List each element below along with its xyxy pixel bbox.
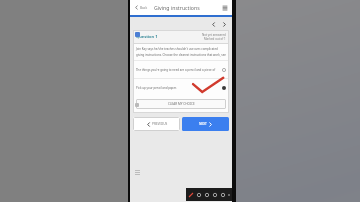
- button[interactable]: PREVIOUS: [133, 117, 180, 131]
- staticText: Giving instructions: [154, 4, 200, 11]
- button[interactable]: NEXT: [182, 117, 229, 131]
- staticText: Back: [140, 6, 148, 10]
- button[interactable]: More: [228, 192, 230, 198]
- staticText: giving instructions. Choose the clearest…: [136, 53, 226, 57]
- button[interactable]: Tool 3: [212, 192, 218, 198]
- button[interactable]: Tool 2: [204, 192, 210, 198]
- staticText: Join Kay says he/she teaches shouldn't u…: [136, 47, 226, 51]
- staticText: The things you're going to need are a pe…: [136, 68, 220, 72]
- button[interactable]: Tool 1: [196, 192, 202, 198]
- button[interactable]: Next question: [220, 20, 228, 28]
- button[interactable]: Tool 4: [220, 192, 226, 198]
- staticText: NEXT: [199, 122, 207, 126]
- button[interactable]: CLEAR MY CHOICE: [136, 99, 226, 109]
- button[interactable]: Draw: [188, 192, 194, 198]
- staticText: Not yet answered: [202, 33, 226, 37]
- staticText: PREVIOUS: [152, 122, 168, 126]
- staticText: Question 1: [136, 34, 158, 39]
- button[interactable]: Menu: [221, 4, 229, 12]
- button[interactable]: Back: [133, 5, 149, 10]
- staticText: CLEAR MY CHOICE: [168, 102, 195, 106]
- button[interactable]: Previous question: [209, 20, 217, 28]
- staticText: Pick up your pencil and paper.: [136, 86, 220, 90]
- staticText: Marked out of 1: [204, 37, 226, 41]
- button[interactable]: The things you're going to need are a pe…: [133, 61, 229, 78]
- button[interactable]: Pick up your pencil and paper.: [133, 79, 229, 96]
